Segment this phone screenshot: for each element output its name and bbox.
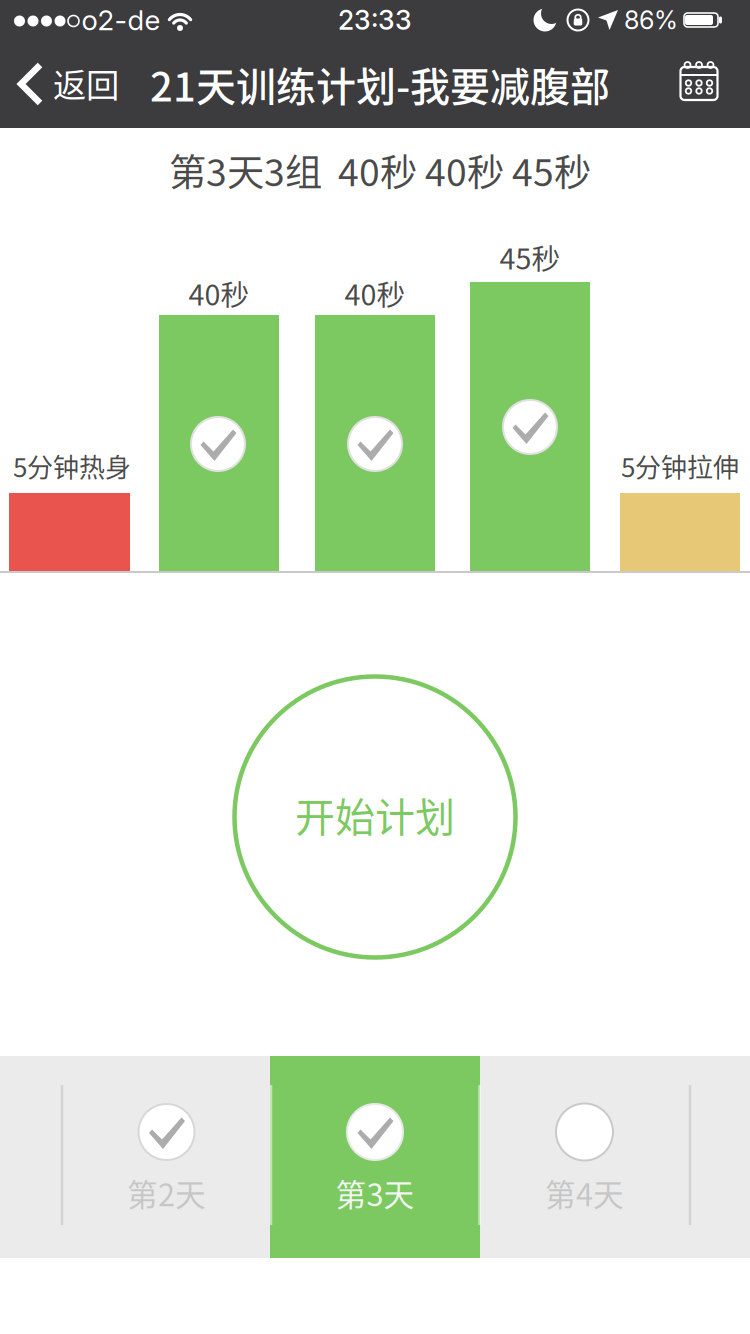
staticText: 第3天 [335,1171,414,1215]
staticText: 开始计划 [295,785,455,843]
button[interactable] [679,61,719,101]
staticText: 40秒 [188,272,249,314]
staticText: 第4天 [545,1171,624,1215]
staticText: o2-de [81,3,160,37]
button[interactable]: 第4天 [479,1056,690,1258]
staticText: 21天训练计划-我要减腹部 [150,55,610,113]
staticText: 45秒 [499,236,560,278]
staticText: 23:33 [338,4,412,36]
staticText: 返回 [53,59,119,107]
button[interactable]: 第3天 [270,1056,480,1258]
staticText: 86% [624,5,678,35]
staticText: 5分钟热身 [13,447,131,485]
button[interactable]: 第2天 [62,1056,271,1258]
staticText: 5分钟拉伸 [621,447,739,485]
staticText: 第3天3组 40秒 40秒 45秒 [169,143,591,197]
button[interactable]: 返回 [0,41,128,127]
staticText: 第2天 [127,1171,206,1215]
button[interactable]: 开始计划 [234,676,515,957]
staticText: 40秒 [344,272,405,314]
